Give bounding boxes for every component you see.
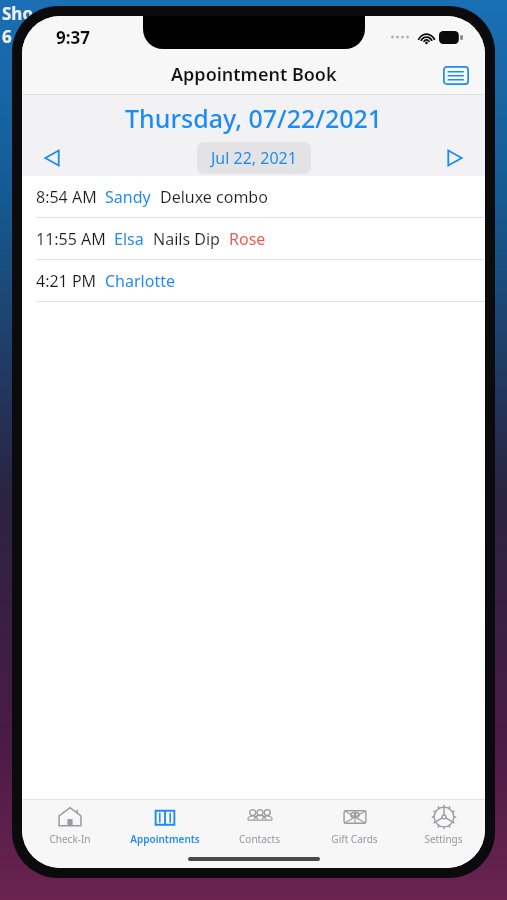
staticText: Charlotte xyxy=(105,270,175,292)
staticText: 4:21 PM xyxy=(36,270,97,292)
staticText: Jul 22, 2021 xyxy=(211,147,297,169)
staticText: Sandy xyxy=(105,186,151,208)
staticText: 8:54 AM xyxy=(36,186,97,208)
button[interactable]: Gift Cards xyxy=(307,804,402,846)
staticText: Settings xyxy=(424,832,463,846)
staticText: 9:37 xyxy=(56,26,90,49)
staticText: Gift Cards xyxy=(331,832,378,846)
button[interactable]: Appointments xyxy=(117,804,212,846)
button[interactable]: Contacts xyxy=(212,804,307,846)
button[interactable]: Settings xyxy=(402,804,485,846)
staticText: 11:55 AM xyxy=(36,228,106,250)
staticText: Sho xyxy=(2,2,34,25)
button[interactable]: Next day xyxy=(433,142,477,174)
button[interactable]: Previous day xyxy=(30,142,74,174)
staticText: Thursday, 07/22/2021 xyxy=(125,101,383,135)
button[interactable]: Jul 22, 2021 xyxy=(197,142,311,174)
staticText: Appointment Book xyxy=(171,62,337,87)
button[interactable]: 4:21 PM xyxy=(22,260,485,301)
button[interactable]: List view xyxy=(439,62,473,88)
button[interactable]: 8:54 AM xyxy=(22,176,485,217)
button[interactable]: Check-In xyxy=(22,804,117,846)
staticText: 6 xyxy=(2,25,12,48)
staticText: Elsa xyxy=(114,228,144,250)
staticText: Check-In xyxy=(49,832,91,846)
staticText: Deluxe combo xyxy=(160,186,268,208)
staticText: Contacts xyxy=(239,832,280,846)
staticText: Nails Dip xyxy=(153,228,220,250)
button[interactable]: 11:55 AM xyxy=(22,218,485,259)
staticText: Appointments xyxy=(130,832,200,846)
staticText: Rose xyxy=(229,228,266,250)
